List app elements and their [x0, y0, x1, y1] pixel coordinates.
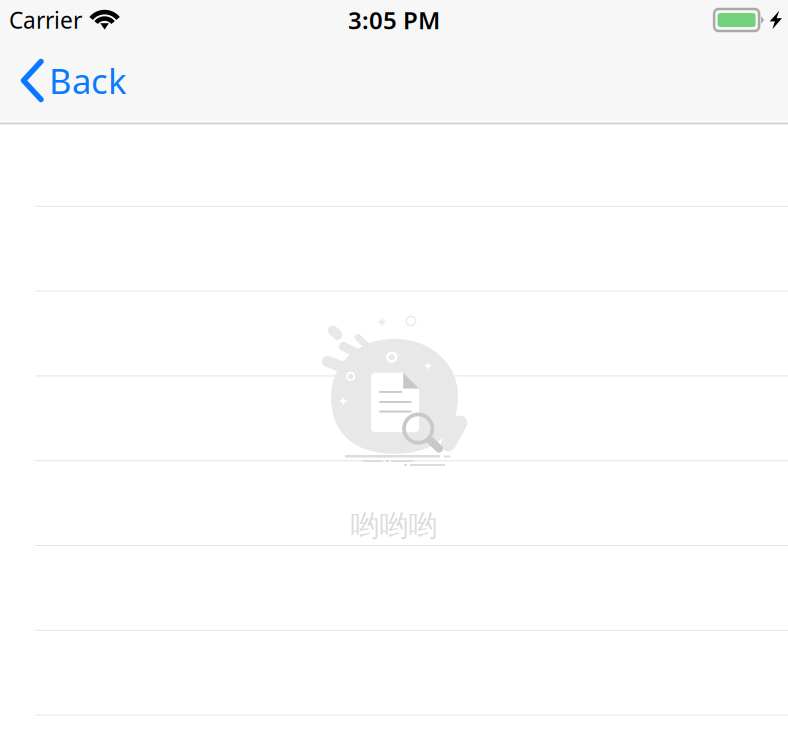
staticText: Back — [49, 57, 127, 103]
staticText: 哟哟哟 — [350, 508, 437, 544]
staticText: Carrier — [9, 5, 82, 35]
staticText: 3:05 PM — [348, 4, 440, 36]
button[interactable]: Back — [0, 40, 145, 121]
